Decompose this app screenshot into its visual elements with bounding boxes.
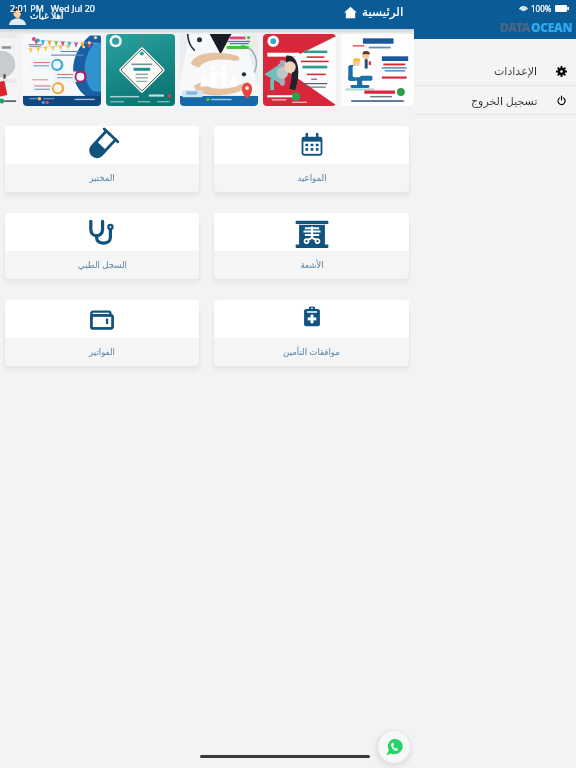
staticText: DATA: [500, 19, 531, 35]
staticText: السجل الطبي: [78, 259, 127, 271]
button[interactable]: WhatsApp: [378, 731, 410, 763]
button[interactable]: Promotion banner: [341, 34, 414, 106]
staticText: الفواتير: [89, 347, 115, 357]
button[interactable]: Promotion banner: [106, 34, 175, 106]
button[interactable]: Promotion banner: [180, 34, 258, 106]
staticText: أهلا غياث: [30, 9, 64, 21]
staticText: 100%: [531, 3, 552, 14]
staticText: موافقات التأمين: [283, 346, 340, 358]
staticText: الرئيسية: [362, 5, 404, 19]
button[interactable]: الإعدادات: [414, 57, 576, 85]
button[interactable]: الفواتير: [5, 300, 199, 366]
button[interactable]: Promotion banner: [0, 34, 17, 106]
button[interactable]: Promotion banner: [263, 34, 336, 106]
staticText: الأشعة: [300, 260, 324, 270]
staticText: تسجيل الخروج: [471, 93, 538, 108]
staticText: المختبر: [89, 173, 115, 183]
button[interactable]: السجل الطبي: [5, 213, 199, 279]
button[interactable]: Home: [344, 5, 404, 19]
button[interactable]: المختبر: [5, 126, 199, 192]
staticText: 2:01 PM Wed Jul 20: [10, 2, 95, 14]
button[interactable]: المواعيد: [214, 126, 409, 192]
staticText: OCEAN: [531, 19, 573, 35]
button[interactable]: تسجيل الخروج: [414, 86, 576, 114]
button[interactable]: Promotion banner: [23, 34, 101, 106]
button[interactable]: موافقات التأمين: [214, 300, 409, 366]
staticText: الإعدادات: [494, 65, 538, 78]
staticText: المواعيد: [297, 173, 327, 183]
button[interactable]: الأشعة: [214, 213, 409, 279]
